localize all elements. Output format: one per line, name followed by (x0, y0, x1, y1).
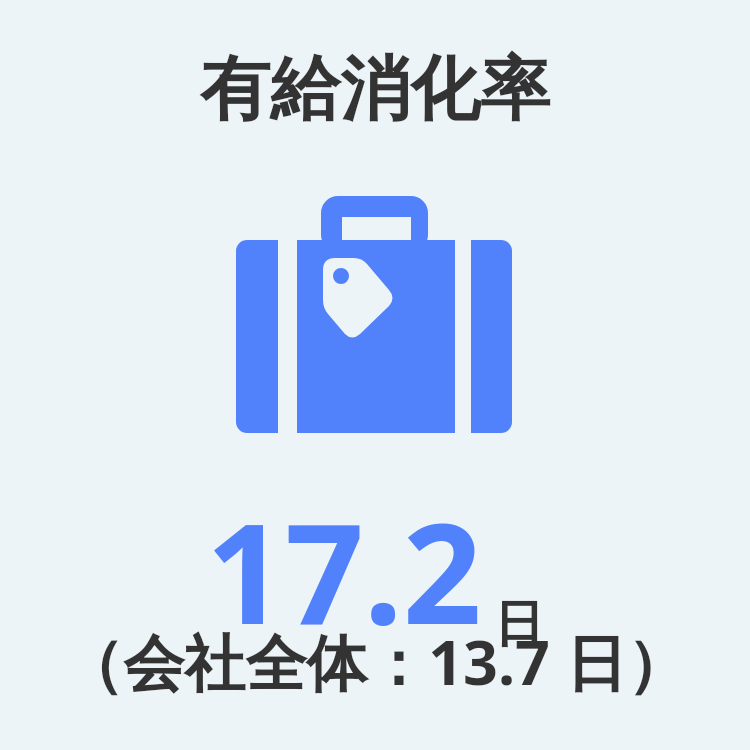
staticText: 17.2 (206, 476, 482, 664)
button[interactable]: Paid leave suitcase (234, 194, 516, 438)
staticText: 日 (494, 593, 544, 656)
staticText: 有給消化率 (200, 46, 550, 134)
staticText: （会社全体：13.7 日） (62, 620, 688, 703)
